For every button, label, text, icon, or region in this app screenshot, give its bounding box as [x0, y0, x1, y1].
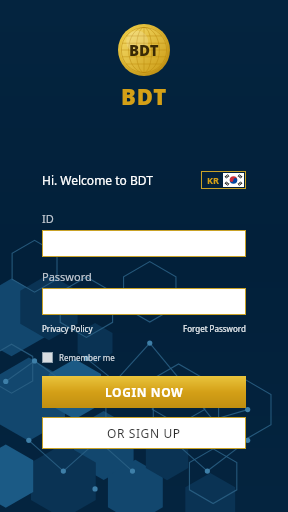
staticText: LOGIN NOW	[105, 384, 184, 400]
staticText: ID	[42, 211, 54, 226]
staticText: Password	[42, 269, 92, 284]
staticText: Hi. Welcome to BDT	[42, 172, 153, 188]
staticText: BDT	[121, 81, 168, 111]
button[interactable]: OR SIGN UP	[42, 417, 246, 449]
staticText: Remember me	[59, 352, 115, 363]
button[interactable]: Password input field	[42, 288, 246, 315]
button[interactable]: LOGIN NOW	[42, 376, 246, 408]
staticText: KR	[207, 174, 219, 186]
button[interactable]: Privacy Policy	[42, 323, 93, 334]
button[interactable]: Remember me	[42, 352, 115, 363]
button[interactable]: Forget Password	[183, 323, 246, 334]
staticText: BDT	[129, 40, 159, 60]
staticText: OR SIGN UP	[107, 425, 181, 441]
button[interactable]: Select language Korean	[203, 173, 244, 187]
button[interactable]: ID input field	[42, 230, 246, 257]
